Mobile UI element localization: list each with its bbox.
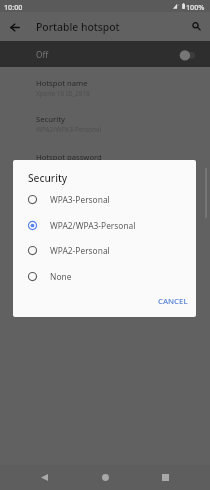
staticText: 10:00 — [4, 2, 23, 12]
staticText: None — [50, 271, 72, 282]
button[interactable]: WPA2-Personal — [13, 237, 196, 263]
staticText: Hotspot name — [36, 78, 88, 88]
staticText: CANCEL — [158, 296, 188, 307]
button[interactable]: Hotspot password — [0, 143, 210, 180]
staticText: WPA2/WPA3-Personal — [50, 220, 136, 231]
staticText: WPA2/WPA3-Personal — [36, 125, 102, 134]
button[interactable]: Recent apps — [145, 465, 185, 490]
button[interactable]: WPA2/WPA3-Personal — [13, 212, 196, 238]
button[interactable]: Off — [0, 41, 210, 67]
staticText: 100% — [186, 2, 205, 12]
button[interactable]: Home — [85, 465, 125, 490]
staticText: WPA2-Personal — [50, 245, 110, 256]
button[interactable]: WPA3-Personal — [13, 186, 196, 212]
button[interactable]: Security — [0, 105, 210, 142]
staticText: WPA3-Personal — [50, 194, 110, 205]
button[interactable]: Search — [181, 12, 210, 41]
button[interactable]: None — [13, 263, 196, 289]
button[interactable]: Back — [24, 465, 64, 490]
staticText: Hotspot password — [36, 152, 102, 162]
staticText: Off — [36, 49, 49, 60]
button[interactable]: CANCEL — [152, 292, 194, 311]
button[interactable]: Hotspot name — [0, 69, 210, 106]
staticText: Security — [28, 171, 68, 185]
staticText: Xperia 10 III_2818 — [36, 89, 90, 98]
button[interactable]: Navigate up — [0, 12, 29, 41]
staticText: Security — [36, 114, 65, 124]
staticText: Portable hotspot — [36, 20, 120, 34]
